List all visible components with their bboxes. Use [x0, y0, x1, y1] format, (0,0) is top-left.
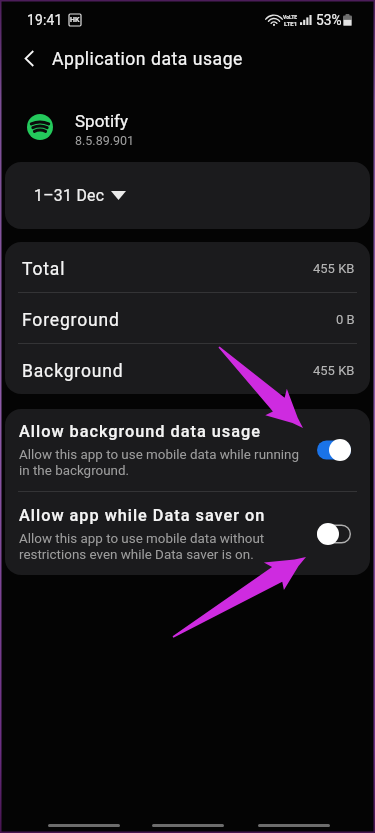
button[interactable]: Back [248, 813, 340, 833]
staticText: HK [70, 16, 80, 24]
button[interactable]: Switch off [317, 523, 351, 545]
button[interactable]: Allow app while Data saver on [5, 492, 370, 575]
staticText: Spotify [75, 111, 128, 131]
button[interactable]: Recent apps [38, 813, 130, 833]
staticText: LTE1 [284, 20, 298, 27]
staticText: 455 KB [313, 363, 355, 378]
staticText: Background [22, 361, 124, 382]
button[interactable]: 1–31 Dec [5, 162, 370, 229]
button[interactable]: Total [5, 242, 370, 292]
staticText: VoLTE [283, 14, 298, 20]
staticText: Allow app while Data saver on [19, 506, 266, 525]
staticText: Allow background data usage [19, 422, 261, 441]
staticText: 455 KB [313, 261, 355, 276]
button[interactable]: Switch on [317, 439, 351, 461]
button[interactable]: Allow background data usage [5, 409, 370, 491]
button[interactable]: Home [142, 813, 234, 833]
staticText: Total [22, 259, 66, 280]
staticText: 8.5.89.901 [75, 133, 135, 148]
button[interactable]: Navigate up [13, 42, 45, 74]
button[interactable]: Foreground [5, 293, 370, 343]
staticText: Application data usage [52, 49, 243, 70]
staticText: Allow this app to use mobile data while … [19, 447, 310, 478]
staticText: Allow this app to use mobile data withou… [19, 531, 310, 562]
button[interactable]: Background [5, 344, 370, 394]
staticText: 19:41 [27, 12, 63, 28]
staticText: 53% [316, 12, 342, 28]
staticText: Foreground [22, 310, 120, 331]
staticText: 1–31 Dec [34, 186, 105, 205]
staticText: 0 B [336, 312, 355, 327]
